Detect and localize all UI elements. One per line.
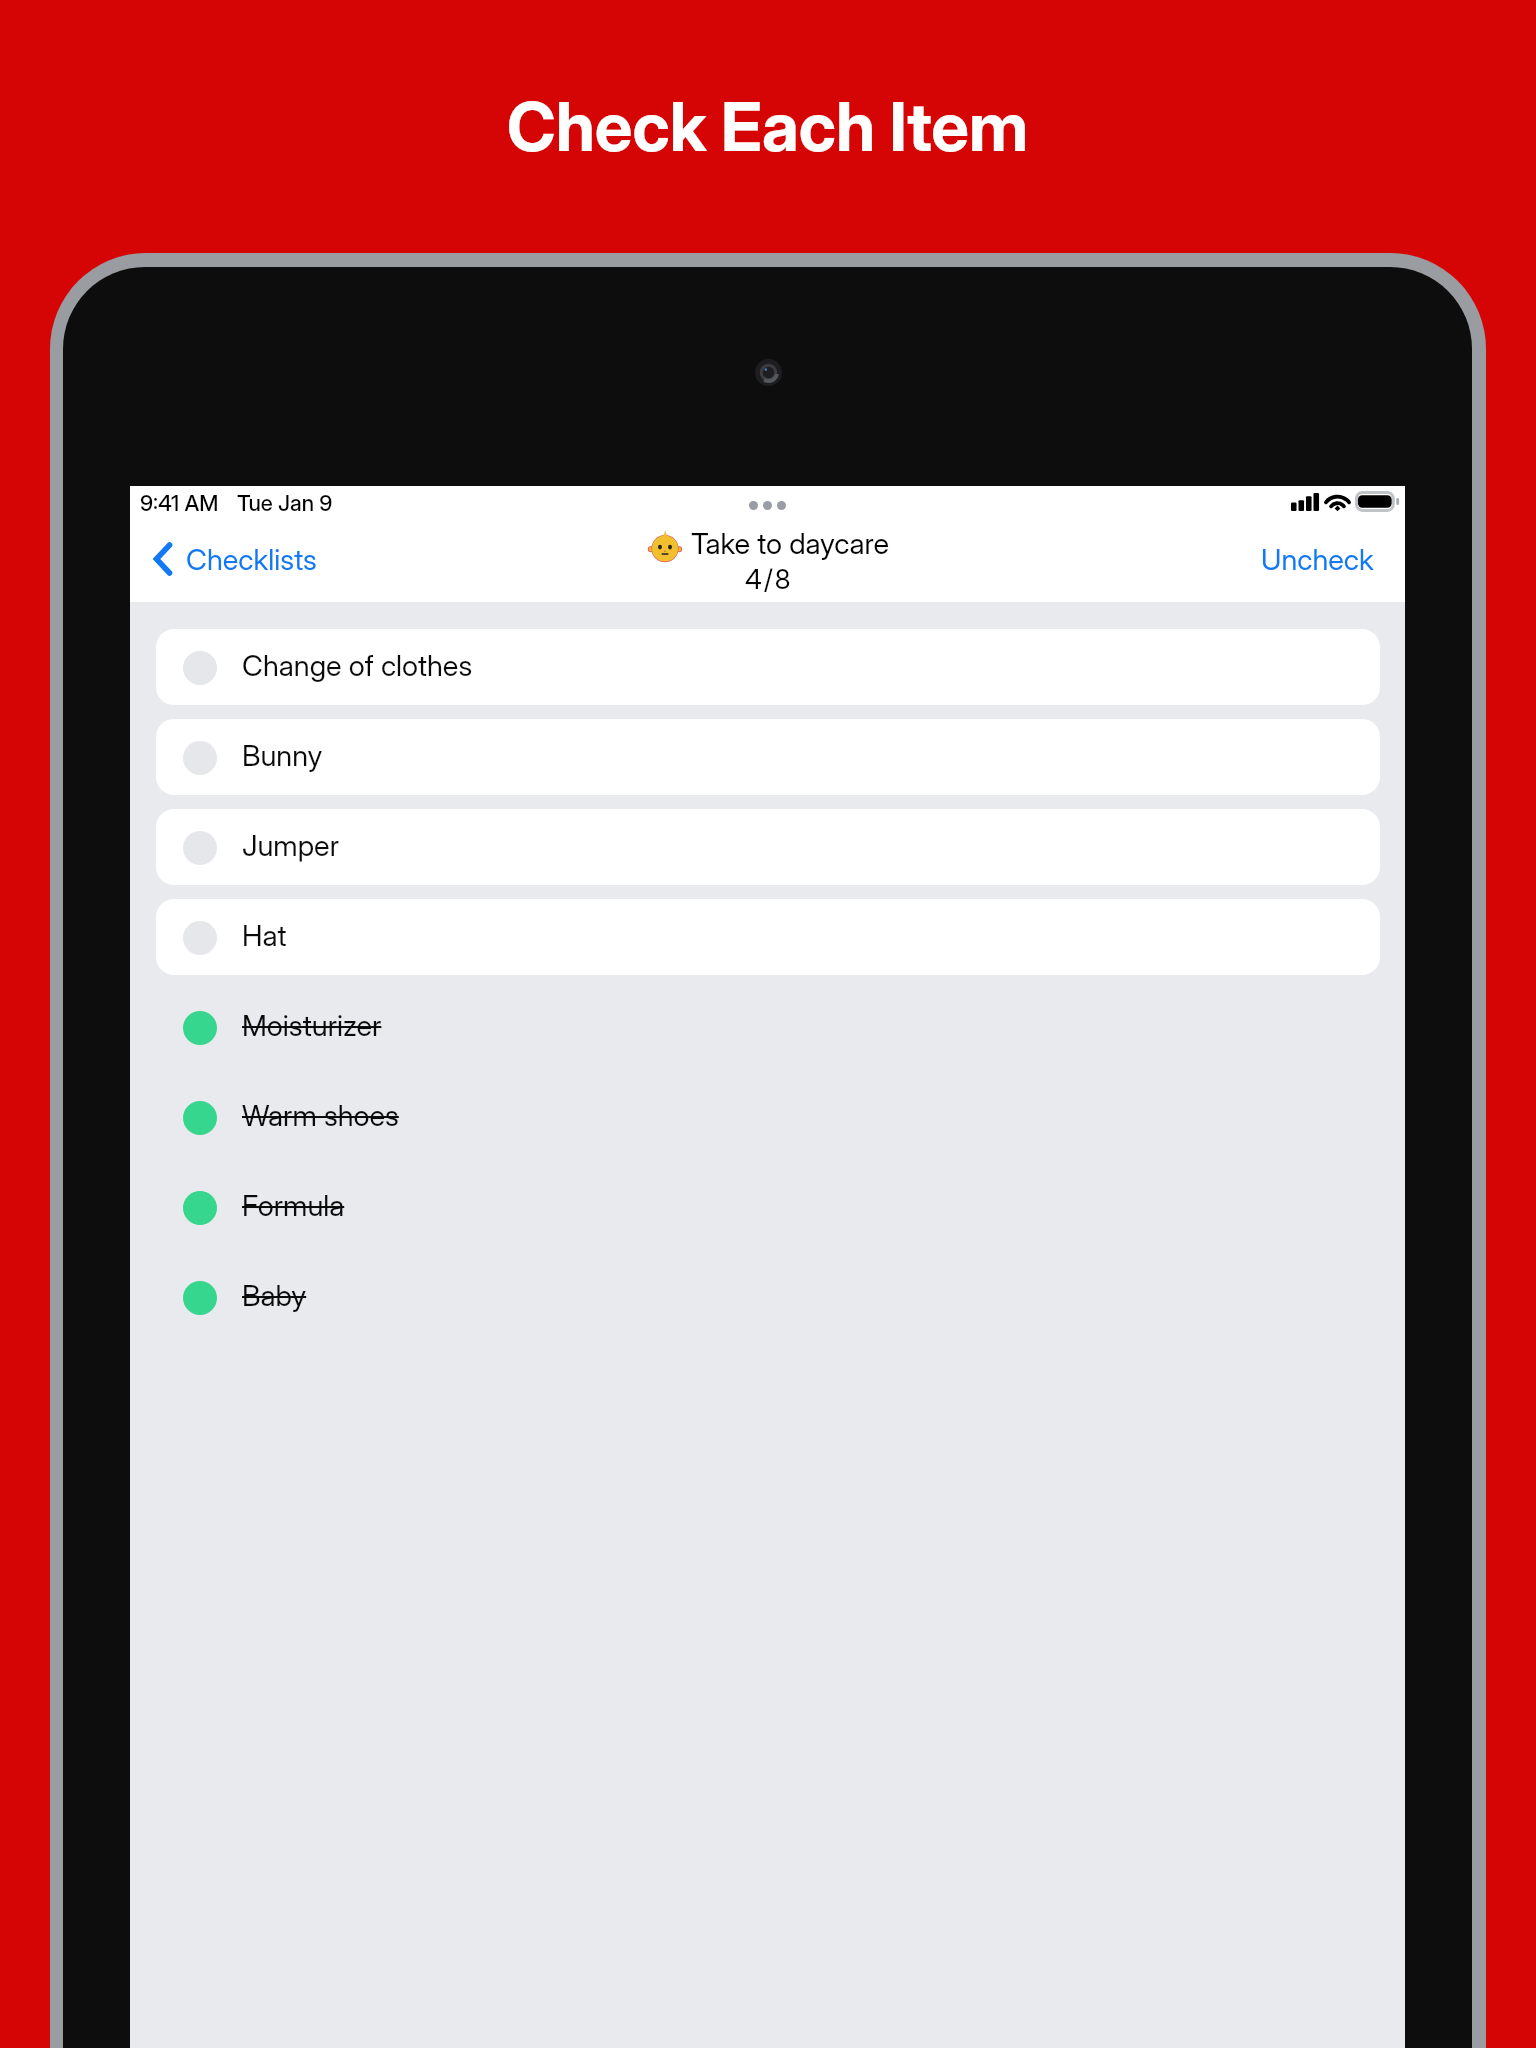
staticText: Checklists	[186, 542, 317, 577]
staticText: Jumper	[242, 828, 339, 863]
staticText: 9:41 AM	[140, 490, 219, 517]
staticText: Tue Jan 9	[237, 490, 333, 517]
staticText: Check Each Item	[507, 86, 1029, 167]
staticText: Moisturizer	[242, 1008, 382, 1043]
button[interactable]: Moisturizer	[156, 989, 1380, 1065]
staticText: Uncheck	[1261, 542, 1374, 577]
button[interactable]: Checklists	[152, 541, 317, 577]
button[interactable]: Formula	[156, 1169, 1380, 1245]
button[interactable]: Change of clothes	[156, 629, 1380, 705]
button[interactable]: More options	[749, 501, 786, 510]
staticText: Change of clothes	[242, 648, 473, 683]
staticText: Warm shoes	[242, 1098, 399, 1133]
staticText: 4/8	[745, 563, 793, 596]
button[interactable]: Baby	[156, 1259, 1380, 1335]
staticText: Baby	[242, 1278, 307, 1313]
button[interactable]: Jumper	[156, 809, 1380, 885]
staticText: Hat	[242, 918, 287, 953]
button[interactable]: Bunny	[156, 719, 1380, 795]
staticText: Take to daycare	[691, 526, 890, 561]
button[interactable]: Warm shoes	[156, 1079, 1380, 1155]
button[interactable]: Hat	[156, 899, 1380, 975]
staticText: Bunny	[242, 738, 323, 773]
staticText: Formula	[242, 1188, 345, 1223]
button[interactable]: Uncheck	[1261, 542, 1374, 577]
